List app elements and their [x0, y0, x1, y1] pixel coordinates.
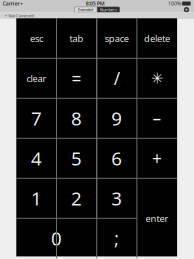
staticText: enter	[145, 212, 168, 224]
staticText: =	[72, 67, 82, 90]
button[interactable]: /	[97, 58, 137, 98]
staticText: 6	[111, 146, 122, 171]
staticText: 2	[71, 186, 82, 211]
button[interactable]: clear	[16, 58, 56, 98]
staticText: 4	[31, 146, 42, 171]
button[interactable]: 4	[16, 138, 56, 178]
button[interactable]: space	[97, 18, 137, 58]
staticText: 100%	[168, 0, 181, 7]
staticText: 9	[111, 106, 122, 131]
staticText: 8	[71, 106, 82, 131]
staticText: +	[152, 147, 162, 170]
button[interactable]: +	[137, 138, 177, 178]
button[interactable]: enter	[137, 178, 177, 258]
staticText: Not Connected	[8, 13, 33, 18]
staticText: ;	[114, 227, 119, 250]
button[interactable]: esc	[16, 18, 56, 58]
button[interactable]: 6	[97, 138, 137, 178]
button[interactable]: 3	[97, 178, 137, 218]
button[interactable]: 9	[97, 98, 137, 138]
staticText: tab	[70, 32, 84, 44]
button[interactable]: delete	[137, 18, 177, 58]
staticText: ▾	[19, 1, 22, 6]
button[interactable]: 2	[56, 178, 97, 218]
button[interactable]: 0	[16, 218, 97, 258]
button[interactable]: 1	[16, 178, 56, 218]
staticText: ✳	[151, 70, 163, 87]
button[interactable]: ✳	[137, 58, 177, 98]
staticText: Carrier	[2, 0, 19, 7]
staticText: 1	[31, 186, 42, 211]
button[interactable]: ;	[97, 218, 137, 258]
staticText: space	[105, 32, 129, 44]
staticText: esc	[30, 32, 43, 44]
button[interactable]: Settings	[183, 6, 190, 13]
staticText: 5	[71, 146, 82, 171]
button[interactable]: tab	[56, 18, 97, 58]
button[interactable]: 8	[56, 98, 97, 138]
staticText: Extended	[78, 7, 93, 12]
button[interactable]: 5	[56, 138, 97, 178]
staticText: Numbers	[100, 7, 117, 12]
staticText: 0	[51, 226, 62, 251]
staticText: –	[152, 107, 161, 130]
staticText: clear	[26, 72, 46, 84]
button[interactable]: 7	[16, 98, 56, 138]
button[interactable]: =	[56, 58, 97, 98]
button[interactable]: Extended	[74, 7, 97, 12]
button[interactable]: –	[137, 98, 177, 138]
staticText: delete	[144, 32, 170, 44]
staticText: /	[114, 67, 120, 90]
staticText: 8:05 PM	[86, 0, 105, 7]
staticText: 7	[31, 106, 42, 131]
staticText: 3	[111, 186, 122, 211]
button[interactable]: Numbers	[97, 7, 120, 12]
